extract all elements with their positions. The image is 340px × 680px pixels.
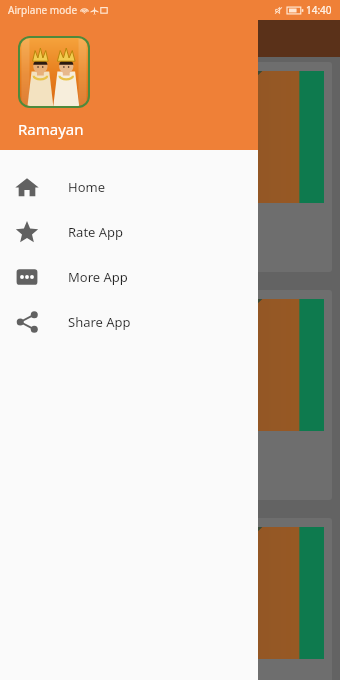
staticText: Share App (68, 313, 131, 331)
staticText: Ramayan (18, 119, 84, 139)
staticText: More App (68, 268, 128, 286)
staticText: Airplane mode (8, 3, 78, 17)
staticText: 14:40 (306, 3, 332, 17)
staticText: Rate App (68, 223, 124, 241)
button[interactable]: Rate App (0, 209, 258, 254)
button[interactable]: Episode (8, 518, 332, 680)
button[interactable]: Episode (8, 62, 332, 272)
button[interactable]: Home (0, 164, 258, 209)
button[interactable]: Episode (8, 290, 332, 500)
staticText: Home (68, 178, 105, 196)
staticText: Episode (18, 215, 74, 235)
button[interactable]: Share App (0, 299, 258, 344)
button[interactable]: More App (0, 254, 258, 299)
